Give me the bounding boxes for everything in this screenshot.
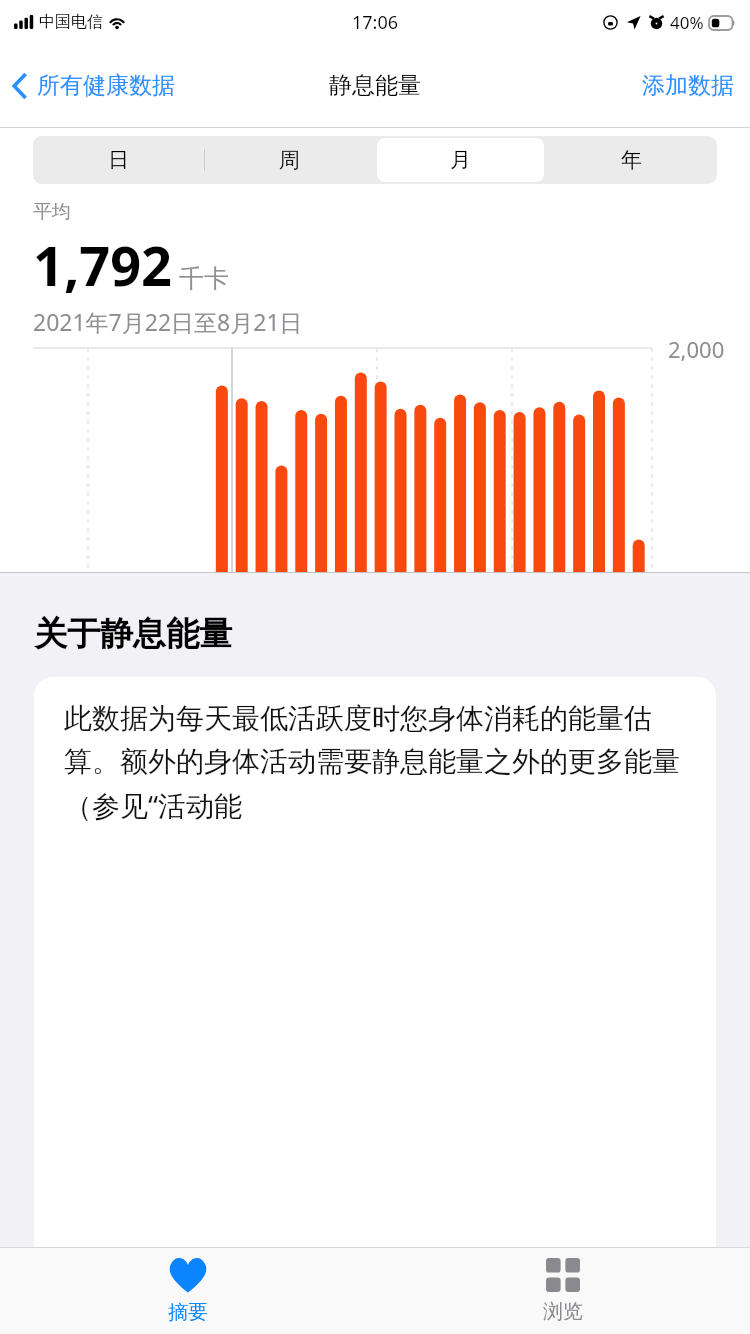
staticText: 1,792 bbox=[33, 228, 172, 302]
staticText: 所有健康数据 bbox=[37, 71, 175, 100]
staticText: 2,000 bbox=[668, 334, 725, 364]
button[interactable]: 年 bbox=[548, 138, 715, 182]
button[interactable]: 月 bbox=[377, 138, 544, 182]
staticText: 日 bbox=[108, 147, 129, 173]
staticText: 月 bbox=[450, 147, 471, 173]
button[interactable]: 浏览 bbox=[375, 1248, 750, 1334]
staticText: 关于静息能量 bbox=[34, 613, 232, 655]
button[interactable]: 日 bbox=[35, 138, 202, 182]
staticText: 平均 bbox=[33, 200, 71, 224]
staticText: 年 bbox=[621, 147, 642, 173]
button[interactable]: 周 bbox=[206, 138, 373, 182]
staticText: 浏览 bbox=[543, 1299, 583, 1324]
staticText: 添加数据 bbox=[642, 71, 734, 100]
staticText: 40% bbox=[670, 11, 704, 34]
button[interactable]: 此数据为每天最低活跃度时您身体消耗的能量估算。额外的身体活动需要静息能量之外的更… bbox=[34, 677, 716, 1247]
button[interactable]: 摘要 bbox=[0, 1248, 375, 1334]
staticText: 千卡 bbox=[179, 263, 229, 294]
staticText: 摘要 bbox=[168, 1300, 208, 1325]
staticText: 周 bbox=[279, 147, 300, 173]
staticText: 此数据为每天最低活跃度时您身体消耗的能量估算。额外的身体活动需要静息能量之外的更… bbox=[64, 701, 696, 824]
button[interactable]: 所有健康数据 bbox=[12, 63, 175, 108]
button[interactable]: 添加数据 bbox=[628, 61, 750, 110]
staticText: 静息能量 bbox=[329, 71, 421, 100]
staticText: 2021年7月22日至8月21日 bbox=[33, 306, 303, 337]
staticText: 中国电信 bbox=[39, 12, 103, 32]
staticText: 17:06 bbox=[352, 10, 399, 35]
